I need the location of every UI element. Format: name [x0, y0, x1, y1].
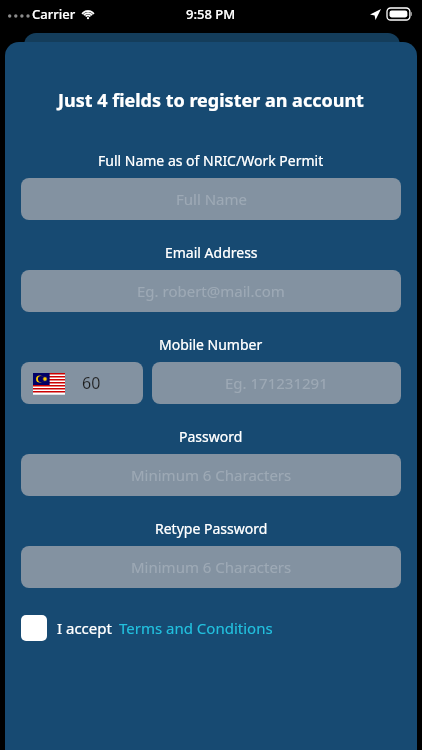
- button[interactable]: Eg. robert@mail.com: [21, 270, 401, 312]
- button[interactable]: Minimum 6 Characters: [21, 454, 401, 496]
- staticText: Eg. 171231291: [225, 373, 328, 393]
- button[interactable]: Accept terms checkbox: [21, 615, 47, 641]
- staticText: Eg. robert@mail.com: [137, 281, 285, 301]
- staticText: I accept: [57, 618, 112, 638]
- staticText: Retype Password: [155, 519, 268, 538]
- button[interactable]: Mobile number: [152, 362, 401, 404]
- staticText: Email Address: [165, 243, 258, 262]
- staticText: Minimum 6 Characters: [131, 465, 292, 485]
- staticText: Full Name: [176, 189, 247, 209]
- staticText: Minimum 6 Characters: [131, 557, 292, 577]
- button[interactable]: Country code 60: [21, 362, 143, 404]
- button[interactable]: Full Name: [21, 178, 401, 220]
- staticText: Full Name as of NRIC/Work Permit: [98, 151, 324, 170]
- button[interactable]: Minimum 6 Characters: [21, 546, 401, 588]
- staticText: Mobile Number: [159, 335, 263, 354]
- staticText: Terms and Conditions: [119, 618, 273, 638]
- staticText: 9:58 PM: [186, 5, 236, 23]
- staticText: Carrier: [32, 5, 76, 23]
- staticText: Password: [179, 427, 243, 446]
- button[interactable]: Terms and Conditions: [119, 618, 273, 638]
- staticText: Just 4 fields to register an account: [58, 88, 364, 113]
- staticText: 60: [82, 372, 101, 394]
